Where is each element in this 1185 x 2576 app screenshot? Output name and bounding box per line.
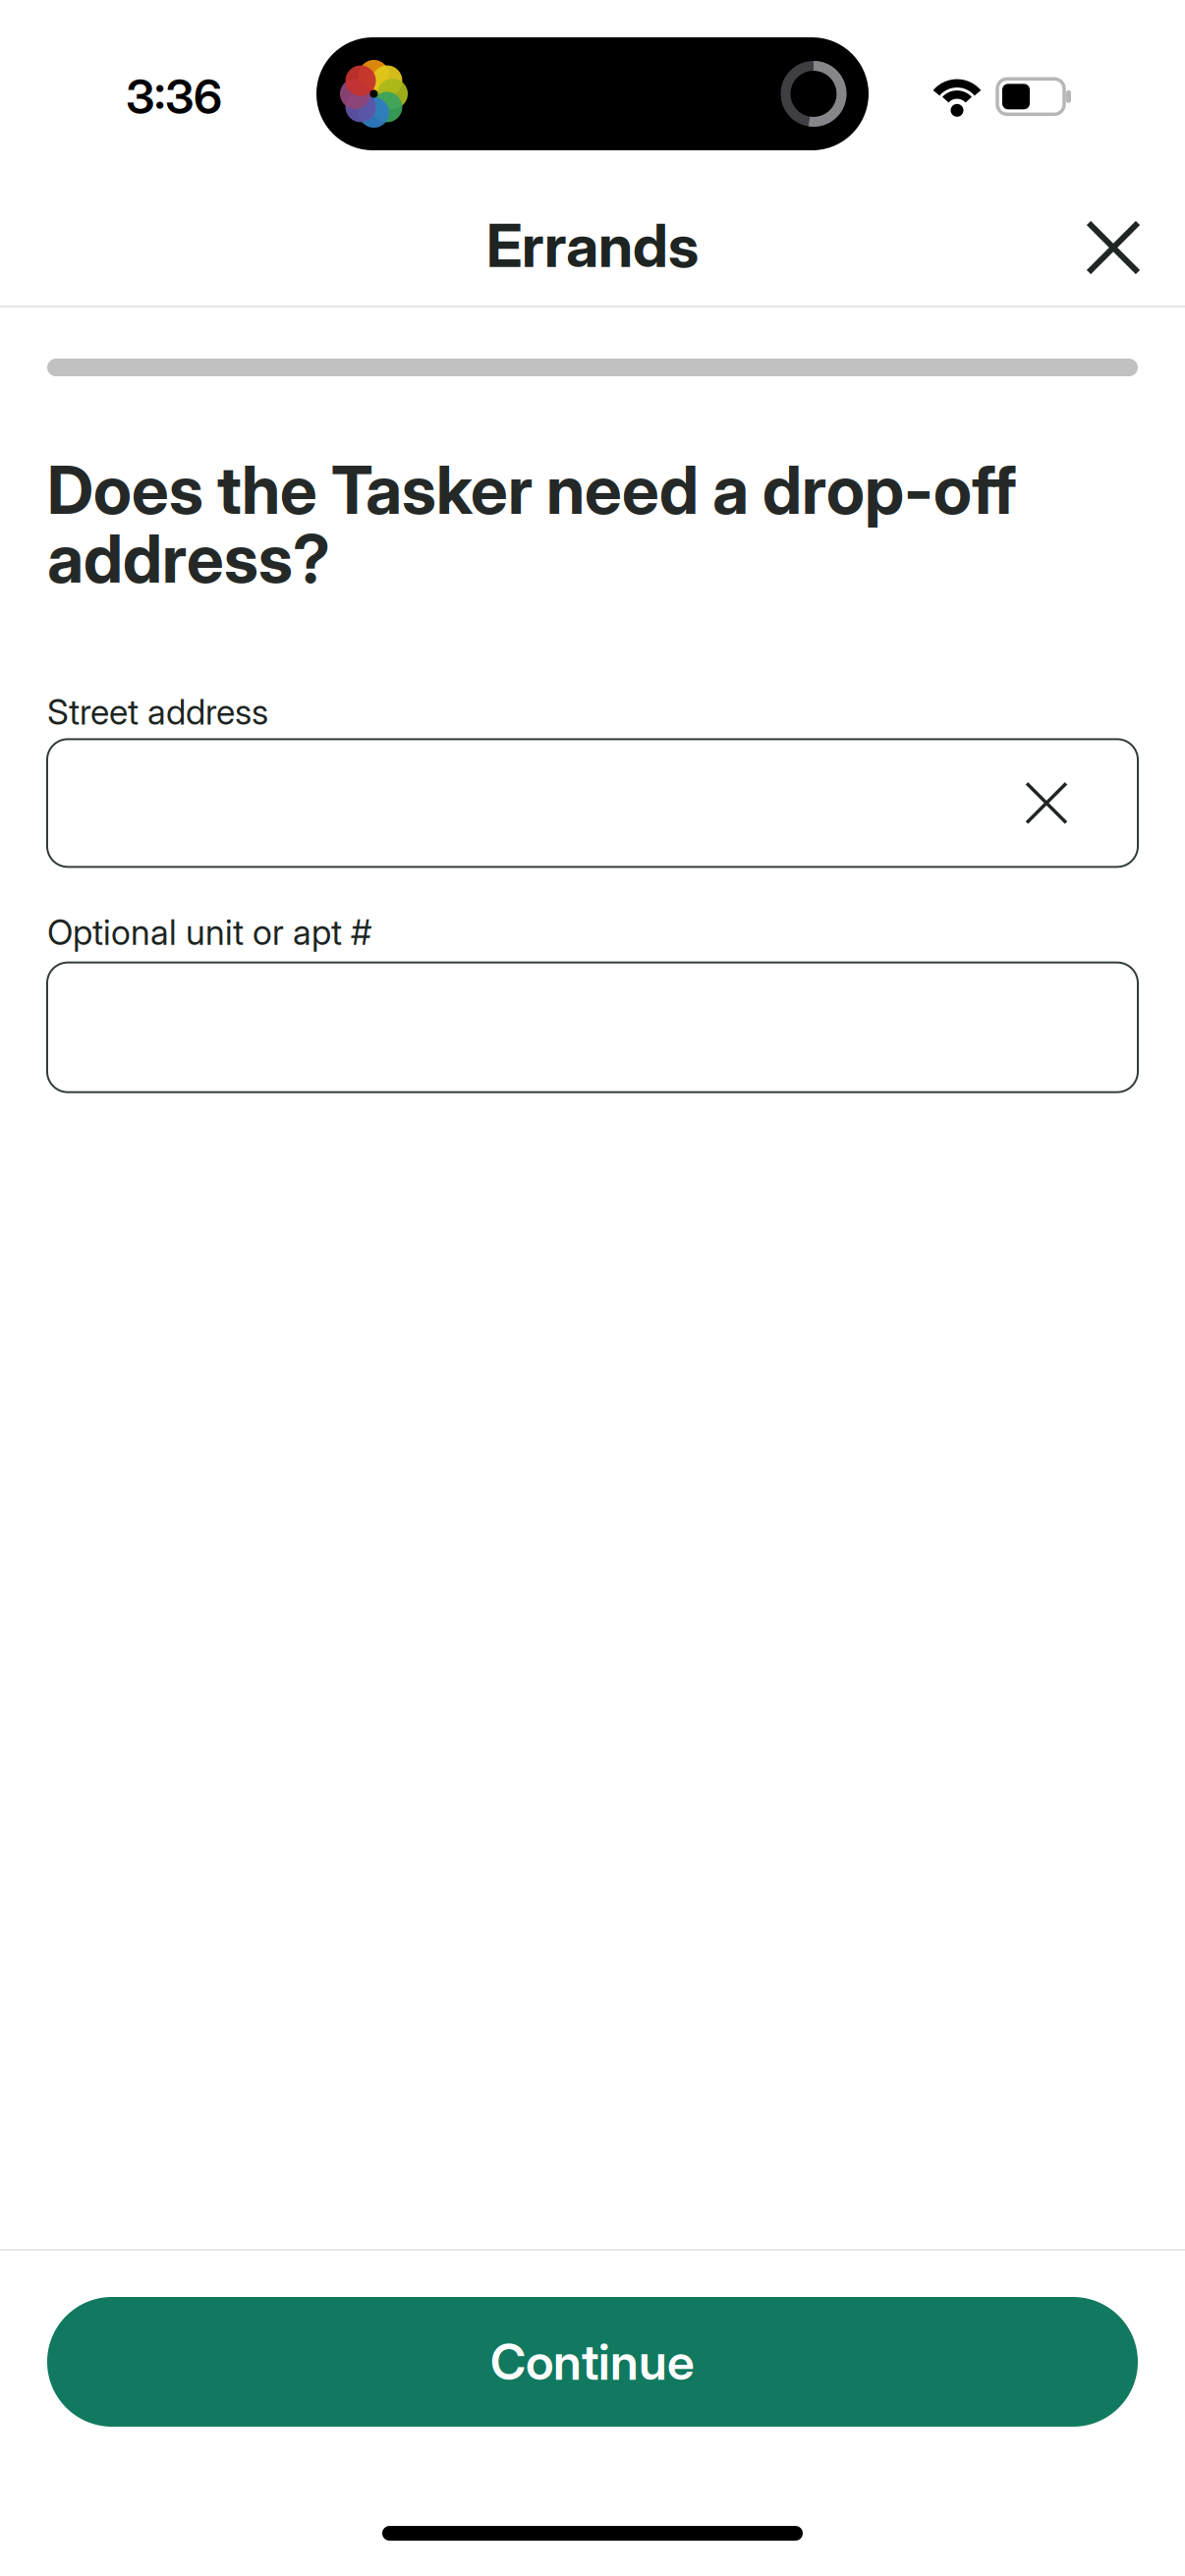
button[interactable]: Optional unit or apt #: [47, 963, 1138, 1092]
staticText: 3:36: [126, 69, 222, 124]
button[interactable]: Close: [1067, 201, 1159, 294]
button[interactable]: Street address: [47, 739, 1138, 867]
staticText: Does the Tasker need a drop-off: [47, 451, 1017, 529]
button[interactable]: Clear street address: [1002, 759, 1091, 847]
staticText: Optional unit or apt #: [47, 912, 371, 953]
staticText: address?: [47, 520, 330, 597]
staticText: Street address: [47, 692, 268, 732]
staticText: Continue: [490, 2333, 695, 2391]
staticText: Errands: [486, 211, 699, 280]
button[interactable]: Continue: [47, 2297, 1138, 2427]
